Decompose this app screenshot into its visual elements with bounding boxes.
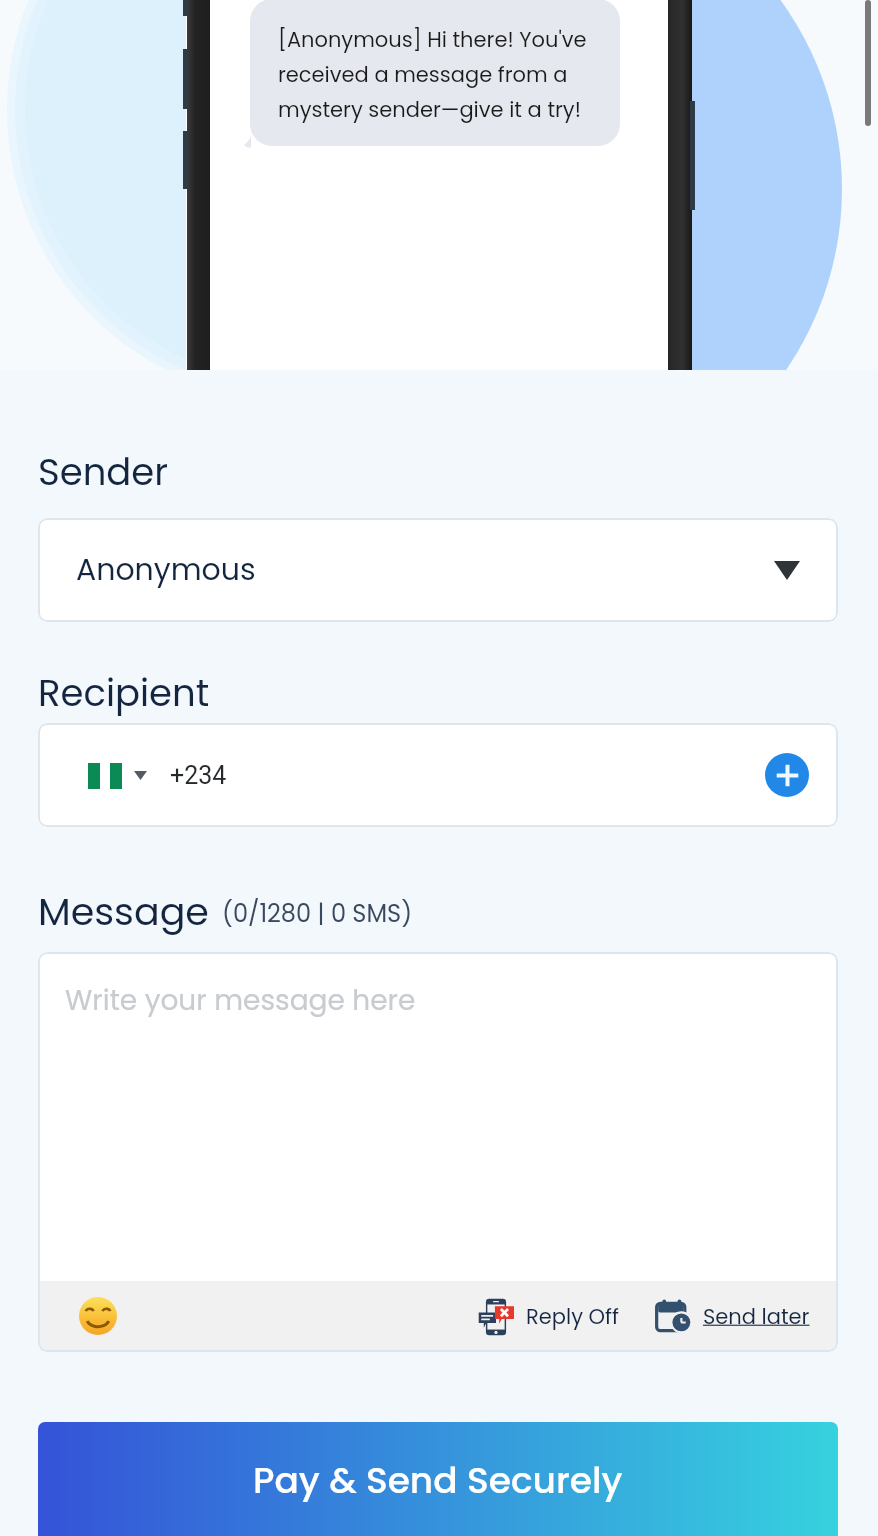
staticText: Write your message here	[65, 981, 416, 1020]
staticText: Pay & Send Securely	[253, 1455, 623, 1505]
staticText: Anonymous	[76, 549, 256, 591]
button[interactable]: Add recipient	[765, 753, 809, 797]
button[interactable]: Emoji picker	[79, 1297, 117, 1335]
button[interactable]: Pay & Send Securely	[38, 1422, 838, 1536]
staticText: Message	[38, 885, 209, 938]
button[interactable]: Country code	[88, 763, 122, 789]
staticText: +234	[170, 761, 227, 790]
button[interactable]: Reply Off	[478, 1281, 619, 1352]
staticText: Send later	[703, 1302, 810, 1331]
staticText: (0/1280 | 0 SMS)	[222, 897, 413, 931]
staticText: Sender	[38, 446, 169, 498]
staticText: Reply Off	[526, 1302, 619, 1331]
button[interactable]: Write your message here	[38, 952, 838, 1281]
button[interactable]: Anonymous	[38, 518, 838, 622]
staticText: Recipient	[38, 667, 210, 719]
staticText: [Anonymous] Hi there! You've received a …	[278, 25, 600, 124]
button[interactable]: Send later	[654, 1281, 810, 1352]
